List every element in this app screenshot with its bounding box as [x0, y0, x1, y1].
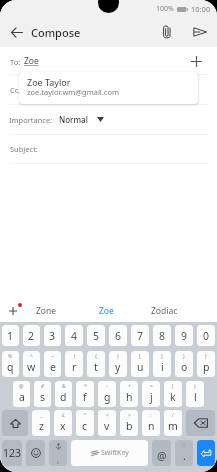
button[interactable]: e	[44, 351, 61, 377]
staticText: &	[62, 383, 66, 390]
button[interactable]: backspace	[186, 410, 215, 436]
staticText: 9	[181, 329, 188, 343]
staticText: k	[170, 390, 176, 404]
button[interactable]: Navigate up	[6, 22, 27, 43]
staticText: -	[161, 442, 163, 449]
staticText: }	[117, 353, 119, 360]
button[interactable]: z	[32, 410, 50, 436]
staticText: {	[95, 353, 97, 360]
staticText: u	[137, 360, 144, 374]
staticText: Compose	[31, 25, 81, 40]
staticText: Zone	[36, 305, 57, 317]
staticText: <	[106, 412, 109, 419]
button[interactable]: y	[109, 351, 127, 377]
button[interactable]: enter	[197, 440, 215, 466]
staticText: @	[157, 449, 167, 463]
staticText: x	[60, 419, 66, 433]
staticText: )	[183, 353, 185, 360]
button[interactable]: l	[186, 381, 204, 407]
staticText: 4	[71, 329, 78, 343]
button[interactable]: Keyboard options	[0, 299, 26, 322]
staticText: *	[84, 383, 87, 390]
staticText: m	[168, 419, 178, 433]
button[interactable]: o	[175, 351, 193, 377]
button[interactable]: Normal	[59, 114, 104, 125]
staticText: o	[181, 360, 188, 374]
button[interactable]: w	[23, 351, 40, 377]
staticText: /	[172, 412, 174, 419]
button[interactable]: mic	[49, 440, 67, 466]
button[interactable]: Zodiac	[138, 299, 190, 322]
button[interactable]: 8	[153, 325, 171, 346]
button[interactable]: m	[164, 410, 182, 436]
button[interactable]: j	[142, 381, 160, 407]
staticText: |	[73, 353, 76, 360]
staticText: d	[60, 390, 67, 404]
button[interactable]: .	[175, 440, 193, 466]
staticText: q	[7, 360, 14, 374]
staticText: ^	[30, 353, 33, 360]
button[interactable]: 3	[44, 325, 61, 346]
button[interactable]: x	[54, 410, 72, 436]
button[interactable]: t	[87, 351, 105, 377]
button[interactable]: c	[76, 410, 94, 436]
staticText: =	[150, 383, 153, 390]
staticText: )	[205, 353, 207, 360]
button[interactable]: @	[152, 440, 171, 466]
button[interactable]: q	[2, 351, 19, 377]
button[interactable]: Zoe	[80, 299, 132, 322]
staticText: To:	[10, 57, 21, 67]
button[interactable]: shift	[2, 410, 28, 436]
button[interactable]: Zoe Taylor	[19, 72, 198, 104]
button[interactable]: emoji	[26, 440, 45, 466]
button[interactable]: p	[197, 351, 215, 377]
button[interactable]: Zone	[20, 299, 72, 322]
staticText: t	[94, 360, 98, 374]
button[interactable]: Attach file	[156, 21, 178, 43]
staticText: c	[82, 419, 88, 433]
button[interactable]: v	[98, 410, 116, 436]
button[interactable]: g	[98, 381, 116, 407]
button[interactable]: h	[120, 381, 138, 407]
staticText: -	[106, 383, 108, 390]
button[interactable]: s	[34, 381, 51, 407]
button[interactable]: u	[131, 351, 149, 377]
button[interactable]: 4	[65, 325, 83, 346]
staticText: Zoe	[24, 55, 39, 67]
button[interactable]: a	[13, 381, 30, 407]
staticText: Zoe	[99, 305, 114, 317]
button[interactable]: Send	[189, 21, 211, 43]
button[interactable]: f	[76, 381, 94, 407]
button[interactable]: 9	[175, 325, 193, 346]
button[interactable]: r	[65, 351, 83, 377]
staticText: b	[126, 419, 133, 433]
button[interactable]: Add recipient	[187, 52, 205, 70]
staticText: a	[19, 390, 25, 404]
staticText: 6	[115, 329, 122, 343]
staticText: zoe.taylor.wm@gmail.com	[27, 87, 119, 97]
button[interactable]: 123	[2, 440, 22, 466]
staticText: +	[128, 383, 131, 390]
staticText: h	[126, 390, 133, 404]
button[interactable]: 0	[197, 325, 215, 346]
button[interactable]: i	[153, 351, 171, 377]
staticText: g	[104, 390, 111, 404]
staticText: ,	[57, 454, 60, 465]
button[interactable]: SwiftKey	[71, 440, 148, 466]
staticText: 0	[203, 329, 210, 343]
button[interactable]: 2	[23, 325, 40, 346]
button[interactable]: 6	[109, 325, 127, 346]
button[interactable]: 7	[131, 325, 149, 346]
button[interactable]: 1	[2, 325, 19, 346]
button[interactable]: d	[55, 381, 72, 407]
staticText: 8	[159, 329, 166, 343]
staticText: £	[62, 412, 65, 419]
staticText: e	[50, 360, 56, 374]
staticText: :	[150, 412, 152, 419]
button[interactable]: b	[120, 410, 138, 436]
staticText: #	[41, 383, 45, 390]
staticText: f	[83, 390, 87, 404]
button[interactable]: n	[142, 410, 160, 436]
button[interactable]: 5	[87, 325, 105, 346]
button[interactable]: k	[164, 381, 182, 407]
